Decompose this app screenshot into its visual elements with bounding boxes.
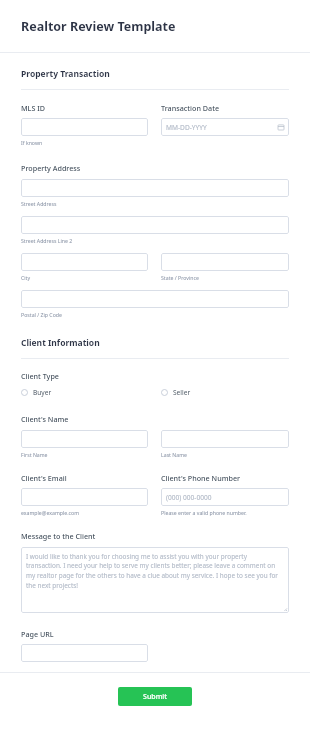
staticText: First Name <box>21 451 48 458</box>
staticText: Buyer <box>33 388 52 397</box>
button[interactable]: Transaction Date <box>161 118 289 136</box>
button[interactable]: State / Province <box>161 253 289 271</box>
button[interactable]: First Name <box>21 430 148 448</box>
button[interactable]: Last Name <box>161 430 289 448</box>
staticText: Street Address Line 2 <box>21 237 73 244</box>
staticText: Client's Phone Number <box>161 473 241 483</box>
staticText: Submit <box>143 692 167 702</box>
staticText: example@example.com <box>21 509 80 516</box>
button[interactable]: Client's Email <box>21 488 148 506</box>
staticText: Street Address <box>21 200 57 207</box>
staticText: MLS ID <box>21 103 46 113</box>
button[interactable]: MLS ID <box>21 118 148 136</box>
staticText: Message to the Client <box>21 531 96 541</box>
staticText: City <box>21 274 31 281</box>
button[interactable]: Message to the Client <box>21 547 289 613</box>
button[interactable]: Submit <box>118 687 192 706</box>
staticText: MM-DD-YYYY <box>166 123 207 132</box>
staticText: State / Province <box>161 274 199 281</box>
staticText: Property Address <box>21 163 81 173</box>
staticText: If known <box>21 139 43 146</box>
staticText: Realtor Review Template <box>21 18 176 35</box>
staticText: Last Name <box>161 451 187 458</box>
staticText: Page URL <box>21 629 54 639</box>
staticText: Client's Email <box>21 473 67 483</box>
staticText: Transaction Date <box>161 103 220 113</box>
staticText: Please enter a valid phone number. <box>161 509 247 516</box>
button[interactable]: Client's Phone Number <box>161 488 289 506</box>
button[interactable]: Street Address Line 2 <box>21 216 289 234</box>
button[interactable]: Buyer <box>21 388 161 397</box>
staticText: Property Transaction <box>21 68 110 80</box>
staticText: Client Information <box>21 337 100 349</box>
button[interactable]: Seller <box>161 388 191 397</box>
staticText: Postal / Zip Code <box>21 311 62 318</box>
button[interactable]: Postal / Zip Code <box>21 290 289 308</box>
staticText: (000) 000-0000 <box>166 493 212 502</box>
staticText: Client's Name <box>21 414 69 424</box>
staticText: I would like to thank you for choosing m… <box>26 552 283 590</box>
staticText: Client Type <box>21 371 59 381</box>
button[interactable]: Page URL <box>21 644 148 662</box>
staticText: Seller <box>173 388 191 397</box>
button[interactable]: Street Address <box>21 179 289 197</box>
button[interactable]: City <box>21 253 148 271</box>
